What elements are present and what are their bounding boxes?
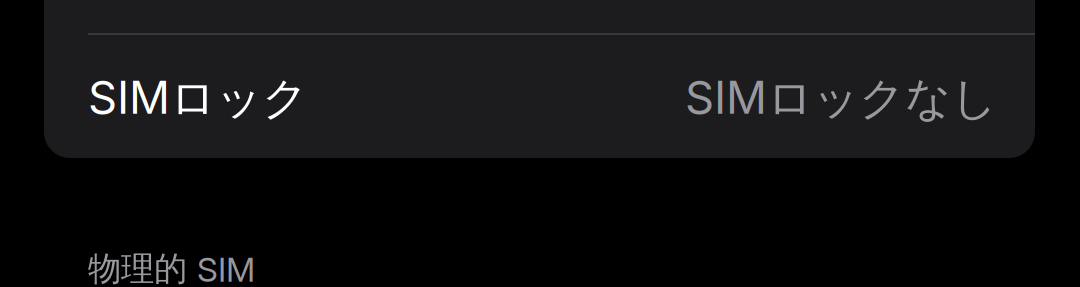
button[interactable]: SIMロック [44, 35, 1035, 158]
staticText: 物理的 SIM [88, 248, 255, 287]
staticText: SIMロックなし [685, 70, 997, 127]
staticText: SIMロック [88, 70, 308, 127]
